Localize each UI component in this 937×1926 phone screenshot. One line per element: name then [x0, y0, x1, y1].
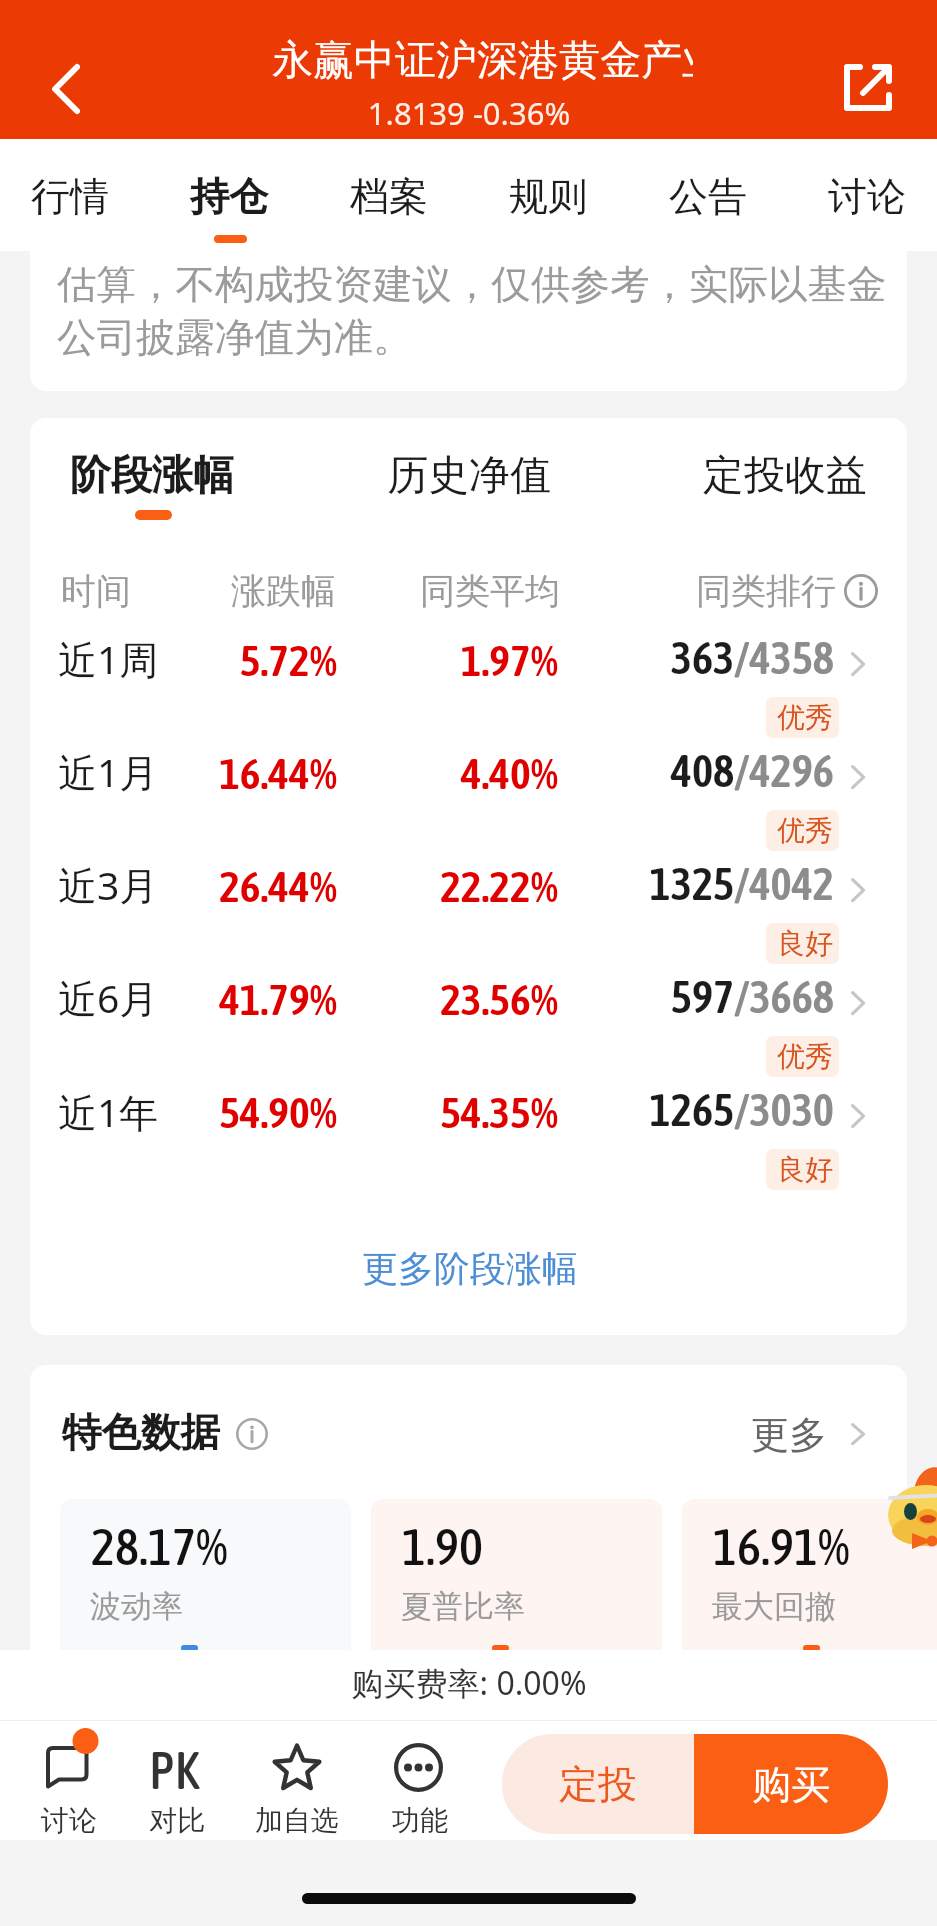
staticText: 定投	[559, 1760, 637, 1809]
staticText: 持仓	[190, 172, 268, 221]
button[interactable]: 规则	[509, 139, 587, 251]
button[interactable]: 阶段涨幅	[60, 418, 340, 524]
staticText: 公告	[669, 172, 747, 221]
button[interactable]: 档案	[350, 139, 428, 251]
button[interactable]: 近6月 41.79% 同类排行 597/3668	[30, 950, 907, 1063]
button[interactable]: 近3月 26.44% 同类排行 1325/4042	[30, 837, 907, 950]
staticText: 特色数据	[62, 1408, 220, 1458]
staticText: 更多阶段涨幅	[270, 1246, 670, 1291]
button[interactable]: 购买	[694, 1734, 888, 1834]
staticText: 波动率	[90, 1587, 183, 1626]
staticText: 363/4358	[514, 632, 834, 684]
staticText: 时间	[61, 569, 131, 613]
staticText: 档案	[350, 172, 428, 221]
staticText: 1265/3030	[514, 1084, 834, 1136]
staticText: 夏普比率	[401, 1587, 525, 1626]
button[interactable]: 最大回撤 16.91%	[682, 1499, 937, 1650]
staticText: 购买费率: 0.00%	[269, 1661, 669, 1705]
staticText: 597/3668	[514, 971, 834, 1023]
button[interactable]: 近1周 5.72% 同类排行 363/4358	[30, 611, 907, 724]
staticText: 定投收益	[547, 450, 867, 502]
staticText: 优秀	[777, 1039, 833, 1074]
staticText: 26.44%	[17, 861, 337, 911]
button[interactable]: 定投	[502, 1734, 694, 1834]
button[interactable]: 持仓	[190, 139, 268, 251]
staticText: 41.79%	[17, 974, 337, 1024]
staticText: 涨跌幅	[16, 569, 336, 613]
staticText: 讨论	[0, 1803, 169, 1838]
staticText: 功能	[320, 1803, 520, 1838]
button[interactable]: 波动率 28.17%	[60, 1499, 351, 1650]
button[interactable]: 功能	[364, 1721, 472, 1840]
button[interactable]: 近1月 16.44% 同类排行 408/4296	[30, 724, 907, 837]
button[interactable]: 对比	[120, 1721, 228, 1840]
staticText: 5.72%	[17, 635, 337, 685]
button[interactable]: 行情	[31, 139, 109, 251]
staticText: 16.91%	[713, 1517, 850, 1575]
staticText: 讨论	[828, 172, 906, 221]
button[interactable]: Back	[44, 62, 90, 108]
staticText: 购买	[752, 1760, 830, 1809]
button[interactable]: 近1年 54.90% 同类排行 1265/3030	[30, 1063, 907, 1176]
staticText: 22.22%	[238, 861, 558, 911]
staticText: 1325/4042	[514, 858, 834, 910]
staticText: 近1年	[58, 1085, 159, 1138]
staticText: 1.8139 -0.36%	[269, 92, 669, 134]
staticText: 永赢中证沪深港黄金产业	[272, 35, 693, 87]
staticText: 近6月	[58, 971, 159, 1024]
staticText: 阶段涨幅	[70, 450, 234, 502]
button[interactable]: 讨论	[828, 139, 906, 251]
staticText: 加自选	[197, 1803, 397, 1838]
button[interactable]: 加自选	[243, 1721, 351, 1840]
button[interactable]: 更多特色数据	[735, 1399, 885, 1467]
button[interactable]: Share	[844, 64, 894, 114]
staticText: 良好	[777, 1152, 833, 1187]
button[interactable]: 讨论	[16, 1721, 124, 1840]
staticText: 54.35%	[238, 1087, 558, 1137]
button[interactable]: 夏普比率 1.90	[371, 1499, 662, 1650]
staticText: 优秀	[777, 813, 833, 848]
button[interactable]: 更多阶段涨幅	[350, 1234, 590, 1302]
button[interactable]: 历史净值	[380, 418, 560, 524]
button[interactable]: 公告	[669, 139, 747, 251]
staticText: 28.17%	[91, 1517, 228, 1575]
staticText: PK	[149, 1740, 200, 1792]
staticText: 优秀	[777, 700, 833, 735]
staticText: 最大回撤	[712, 1587, 836, 1626]
staticText: 4.40%	[238, 748, 558, 798]
staticText: 更多	[507, 1411, 827, 1459]
staticText: 近1周	[58, 632, 159, 685]
staticText: 对比	[77, 1803, 277, 1838]
staticText: 同类平均	[240, 569, 560, 613]
staticText: 近3月	[58, 858, 159, 911]
staticText: 良好	[777, 926, 833, 961]
staticText: 近1月	[58, 745, 159, 798]
staticText: 54.90%	[17, 1087, 337, 1137]
staticText: 估算，不构成投资建议，仅供参考，实际以基金	[57, 260, 887, 310]
staticText: 408/4296	[514, 745, 834, 797]
staticText: 公司披露净值为准。	[57, 313, 413, 363]
staticText: 1.97%	[238, 635, 558, 685]
staticText: 23.56%	[238, 974, 558, 1024]
staticText: 16.44%	[17, 748, 337, 798]
staticText: 同类排行	[516, 569, 836, 613]
staticText: 1.90	[402, 1517, 483, 1575]
staticText: 历史净值	[269, 450, 669, 502]
button[interactable]: 定投收益	[690, 418, 880, 524]
staticText: 行情	[31, 172, 109, 221]
staticText: 规则	[509, 172, 587, 221]
